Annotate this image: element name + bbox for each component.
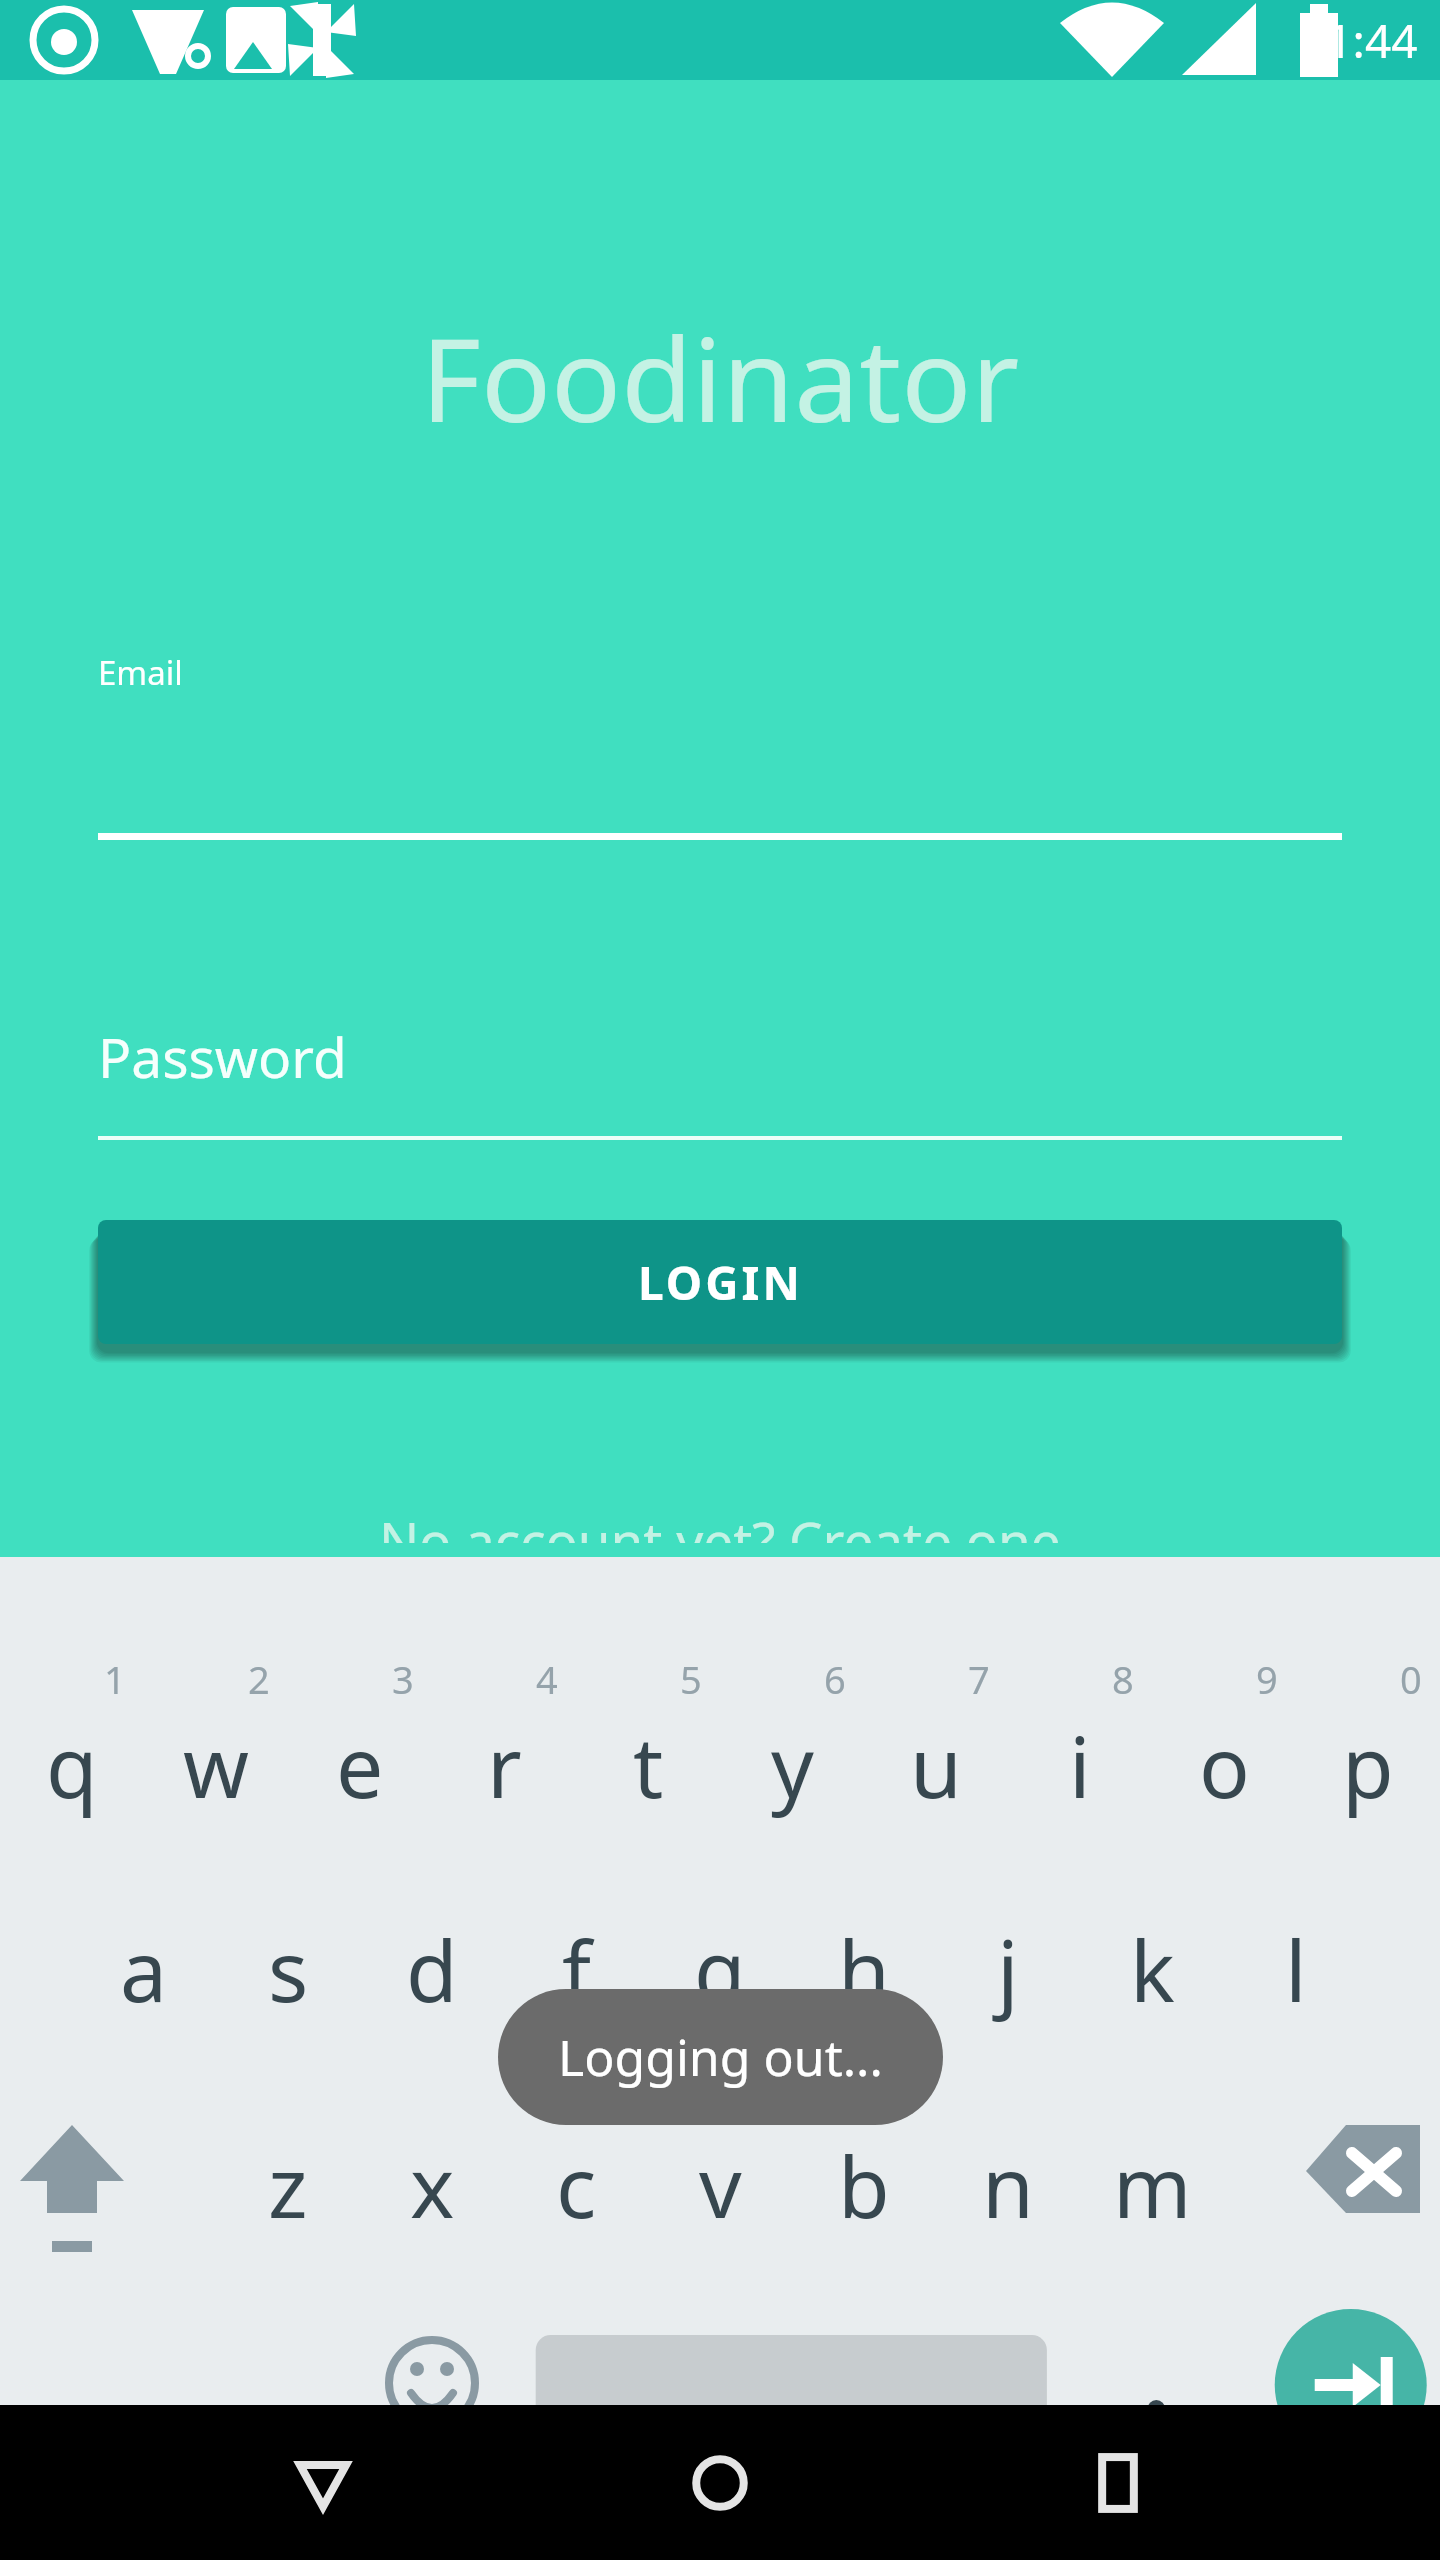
staticText: 2 bbox=[248, 1653, 270, 1705]
staticText: i bbox=[1069, 1708, 1091, 1822]
staticText: LOGIN bbox=[638, 1251, 803, 1314]
button[interactable]: h bbox=[792, 1889, 936, 2049]
button[interactable]: Backspace bbox=[1224, 2105, 1440, 2265]
staticText: Email bbox=[98, 650, 183, 695]
staticText: p bbox=[1342, 1708, 1394, 1822]
staticText: g bbox=[694, 1912, 746, 2026]
staticText: 9 bbox=[1256, 1653, 1278, 1705]
staticText: e bbox=[336, 1708, 384, 1822]
button[interactable]: l bbox=[1224, 1889, 1368, 2049]
staticText: 7 bbox=[968, 1653, 990, 1705]
button[interactable]: n bbox=[936, 2105, 1080, 2265]
button[interactable]: r bbox=[432, 1685, 576, 1845]
staticText: t bbox=[633, 1708, 664, 1822]
staticText: o bbox=[1199, 1708, 1250, 1822]
staticText: c bbox=[556, 2128, 597, 2242]
button[interactable]: d bbox=[360, 1889, 504, 2049]
staticText: Logging out... bbox=[558, 2023, 883, 2091]
button[interactable]: Back bbox=[248, 2408, 398, 2558]
button[interactable]: q bbox=[0, 1685, 144, 1845]
staticText: m bbox=[1113, 2128, 1192, 2242]
staticText: 11:44 bbox=[1300, 9, 1418, 72]
button[interactable]: a bbox=[72, 1889, 216, 2049]
staticText: 6 bbox=[824, 1653, 846, 1705]
staticText: n bbox=[982, 2128, 1034, 2242]
button[interactable]: z bbox=[216, 2105, 360, 2265]
button[interactable]: p bbox=[1296, 1685, 1440, 1845]
staticText: 3 bbox=[392, 1653, 414, 1705]
staticText: No account yet? Create one bbox=[379, 1504, 1061, 1543]
staticText: q bbox=[46, 1708, 98, 1822]
staticText: s bbox=[268, 1912, 309, 2026]
button[interactable]: w bbox=[144, 1685, 288, 1845]
button[interactable]: f bbox=[504, 1889, 648, 2049]
staticText: d bbox=[406, 1912, 458, 2026]
staticText: b bbox=[838, 2128, 890, 2242]
staticText: 1 bbox=[104, 1653, 126, 1705]
button[interactable]: LOGIN bbox=[98, 1220, 1342, 1344]
staticText: 5 bbox=[680, 1653, 702, 1705]
staticText: x bbox=[410, 2128, 455, 2242]
staticText: r bbox=[487, 1708, 522, 1822]
button[interactable]: v bbox=[648, 2105, 792, 2265]
staticText: f bbox=[562, 1912, 591, 2026]
button[interactable]: Password bbox=[98, 985, 1342, 1140]
staticText: 8 bbox=[1112, 1653, 1134, 1705]
button[interactable]: s bbox=[216, 1889, 360, 2049]
staticText: j bbox=[997, 1912, 1019, 2026]
button[interactable]: Shift bbox=[0, 2105, 216, 2265]
staticText: k bbox=[1130, 1912, 1175, 2026]
staticText: Foodinator bbox=[0, 298, 1440, 456]
staticText: Password bbox=[98, 1019, 347, 1094]
button[interactable]: e bbox=[288, 1685, 432, 1845]
staticText: l bbox=[1285, 1912, 1307, 2026]
button[interactable]: g bbox=[648, 1889, 792, 2049]
button[interactable]: m bbox=[1080, 2105, 1224, 2265]
staticText: u bbox=[910, 1708, 962, 1822]
button[interactable]: y bbox=[720, 1685, 864, 1845]
button[interactable]: j bbox=[936, 1889, 1080, 2049]
button[interactable]: No account yet? Create one bbox=[355, 1490, 1085, 1557]
button[interactable]: t bbox=[576, 1685, 720, 1845]
button[interactable]: u bbox=[864, 1685, 1008, 1845]
button[interactable]: Home bbox=[645, 2408, 795, 2558]
staticText: 0 bbox=[1400, 1653, 1422, 1705]
staticText: a bbox=[120, 1912, 168, 2026]
staticText: y bbox=[771, 1708, 814, 1822]
button[interactable]: x bbox=[360, 2105, 504, 2265]
button[interactable]: i bbox=[1008, 1685, 1152, 1845]
button[interactable]: c bbox=[504, 2105, 648, 2265]
button[interactable]: Recents bbox=[1043, 2408, 1193, 2558]
button[interactable]: b bbox=[792, 2105, 936, 2265]
button[interactable]: k bbox=[1080, 1889, 1224, 2049]
staticText: v bbox=[699, 2128, 742, 2242]
staticText: z bbox=[268, 2128, 308, 2242]
button[interactable]: Email bbox=[98, 650, 1342, 840]
staticText: 4 bbox=[536, 1653, 558, 1705]
button[interactable]: o bbox=[1152, 1685, 1296, 1845]
staticText: w bbox=[183, 1708, 250, 1822]
staticText: h bbox=[838, 1912, 890, 2026]
